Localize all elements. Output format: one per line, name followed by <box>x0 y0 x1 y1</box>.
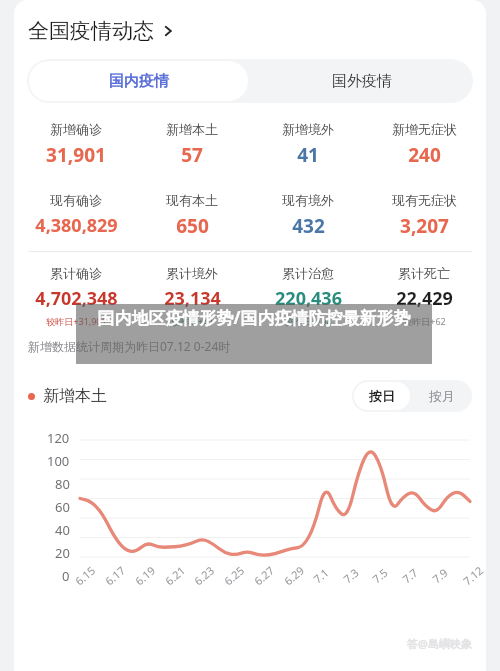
staticText: 0 <box>62 567 70 585</box>
staticText: 现有境外 <box>282 192 334 208</box>
staticText: 7.12 <box>460 563 486 588</box>
staticText: 国内疫情 <box>109 72 169 91</box>
staticText: 23,134 <box>164 286 221 311</box>
staticText: 6.21 <box>162 563 188 588</box>
staticText: 累计确诊 <box>50 265 102 281</box>
staticText: 80 <box>55 475 70 493</box>
staticText: 较昨日+31,901 <box>46 315 107 327</box>
staticText: 6.17 <box>102 563 128 588</box>
staticText: 较昨日+41 <box>171 315 214 327</box>
staticText: 国内地区疫情形势/国内疫情防控最新形势 <box>97 306 411 329</box>
staticText: 4,702,348 <box>35 286 118 311</box>
staticText: 31,901 <box>46 142 106 168</box>
staticText: 100 <box>47 452 70 470</box>
staticText: 累计境外 <box>166 265 218 281</box>
staticText: 432 <box>292 213 325 239</box>
staticText: 57 <box>181 142 203 168</box>
button[interactable]: 国内疫情 <box>29 61 248 101</box>
staticText: 6.29 <box>281 563 307 588</box>
staticText: 按日 <box>369 388 395 404</box>
staticText: 220,436 <box>275 286 342 311</box>
staticText: 较昨日+194 <box>284 315 332 327</box>
staticText: 41 <box>297 142 319 168</box>
other: More <box>161 24 175 38</box>
staticText: 新增数据统计周期为昨日07.12 0-24时 <box>28 338 231 354</box>
staticText: 新增无症状 <box>392 121 457 137</box>
staticText: 6.25 <box>221 563 247 588</box>
staticText: 新增本土 <box>166 121 218 137</box>
staticText: 按月 <box>429 388 455 404</box>
button[interactable]: 按日 <box>354 382 410 410</box>
staticText: 累计治愈 <box>282 265 334 281</box>
staticText: 60 <box>55 498 70 516</box>
staticText: 3,207 <box>400 213 449 239</box>
staticText: 答@島嶼映象 <box>407 636 472 651</box>
staticText: 240 <box>408 142 441 168</box>
staticText: 新增境外 <box>282 121 334 137</box>
staticText: 新增本土 <box>43 386 107 406</box>
staticText: 4,380,829 <box>35 213 118 238</box>
staticText: 7.3 <box>340 565 362 586</box>
staticText: 现有确诊 <box>50 192 102 208</box>
staticText: 40 <box>55 521 70 539</box>
staticText: 120 <box>47 429 70 447</box>
staticText: 7.9 <box>429 565 451 586</box>
staticText: 新增确诊 <box>50 121 102 137</box>
staticText: 650 <box>176 213 209 239</box>
staticText: 22,429 <box>396 286 453 311</box>
staticText: 累计死亡 <box>398 265 450 281</box>
button[interactable]: 国外疫情 <box>250 59 473 103</box>
button[interactable]: 全国疫情动态 <box>14 16 486 46</box>
staticText: 现有本土 <box>166 192 218 208</box>
staticText: 国外疫情 <box>332 72 392 91</box>
button[interactable]: 按月 <box>412 380 472 412</box>
staticText: 6.23 <box>191 563 217 588</box>
staticText: 6.27 <box>251 563 277 588</box>
staticText: 20 <box>55 544 70 562</box>
staticText: 6.15 <box>72 563 98 588</box>
staticText: 7.7 <box>399 565 421 586</box>
staticText: 现有无症状 <box>392 192 457 208</box>
staticText: 7.1 <box>310 565 332 586</box>
staticText: 6.19 <box>132 563 158 588</box>
staticText: 全国疫情动态 <box>28 18 154 44</box>
staticText: 7.5 <box>369 565 391 586</box>
staticText: 较昨日+62 <box>403 315 446 327</box>
